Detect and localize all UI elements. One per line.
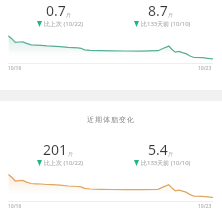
staticText: 201 [43,140,68,159]
staticText: 近期体脂变化 [0,115,222,124]
staticText: 10/23 [198,203,212,210]
staticText: 比上次 (10/22) [44,159,84,167]
staticText: 0.7 [46,1,66,20]
button[interactable]: 201 [8,140,108,167]
staticText: 斤 [168,12,173,18]
staticText: 10/16 [8,203,22,210]
staticText: 比133天前 (10/10) [141,159,191,167]
staticText: 比上次 (10/22) [44,20,84,28]
staticText: 斤 [168,151,173,157]
staticText: 比133天前 (10/10) [141,20,191,28]
staticText: 10/23 [198,65,212,72]
staticText: 10/16 [8,65,22,72]
staticText: 5.4 [148,140,168,159]
staticText: 斤 [66,12,71,18]
button[interactable]: 5.4 [110,140,210,167]
staticText: 8.7 [148,1,168,20]
button[interactable]: 0.7 [8,1,108,28]
staticText: 斤 [68,151,73,157]
button[interactable]: 8.7 [110,1,210,28]
